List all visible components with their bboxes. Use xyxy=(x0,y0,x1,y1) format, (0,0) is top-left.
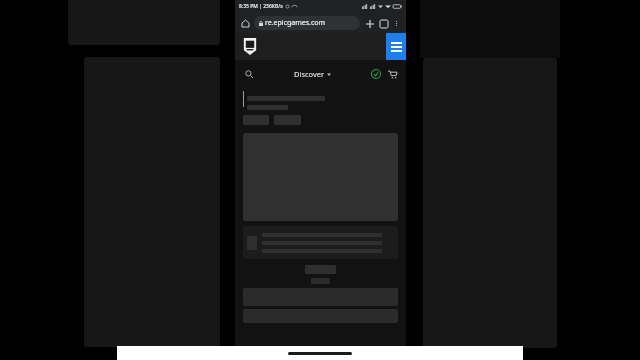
staticText: re.epicgames.com xyxy=(265,18,326,28)
button[interactable]: Account status xyxy=(369,67,383,81)
button[interactable]: Epic Games home xyxy=(243,38,257,55)
staticText: 8:35 PM | 236KB/s xyxy=(239,3,283,10)
button[interactable]: Home xyxy=(239,17,252,30)
button[interactable]: Menu xyxy=(386,33,406,60)
button[interactable] xyxy=(243,226,398,259)
button[interactable]: More options xyxy=(391,18,402,29)
button[interactable]: Tabs xyxy=(377,17,390,30)
button[interactable]: New tab xyxy=(363,17,376,30)
staticText: Discover xyxy=(294,69,325,79)
button[interactable]: Discover xyxy=(291,67,334,81)
button[interactable]: Search xyxy=(242,67,256,81)
button[interactable]: re.epicgames.com xyxy=(254,16,360,30)
button[interactable]: Cart xyxy=(385,67,399,81)
